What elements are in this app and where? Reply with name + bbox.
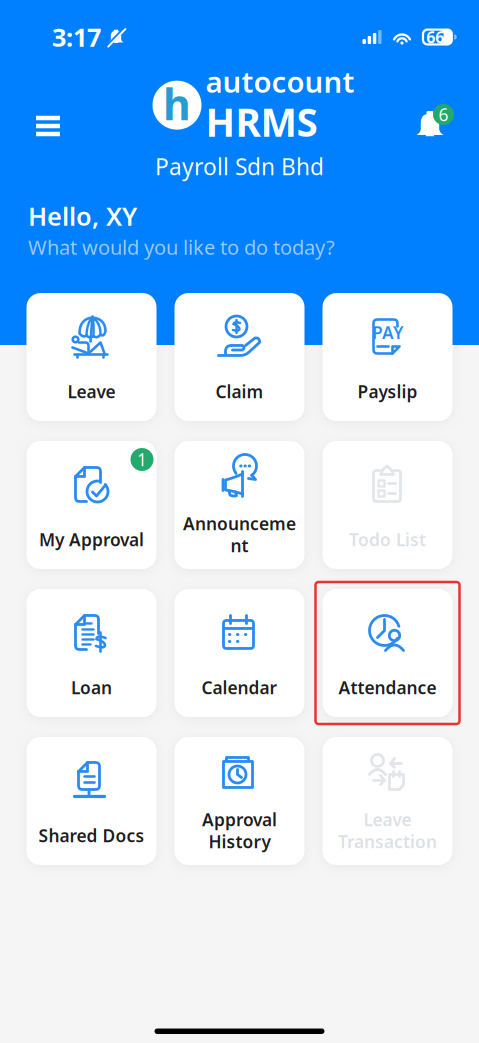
staticText: 3:17 xyxy=(52,20,101,54)
staticText: Leave xyxy=(67,380,115,403)
staticText: Approval xyxy=(202,808,277,831)
staticText: Claim xyxy=(215,380,263,403)
staticText: 66 xyxy=(426,26,444,48)
staticText: Payroll Sdn Bhd xyxy=(155,151,324,181)
button[interactable]: Menu xyxy=(16,101,82,151)
staticText: 1 xyxy=(137,448,147,471)
staticText: What would you like to do today? xyxy=(28,234,335,260)
staticText: Attendance xyxy=(338,676,436,699)
button[interactable]: Calendar xyxy=(174,589,304,717)
button[interactable]: Notifications xyxy=(408,95,462,149)
staticText: h xyxy=(163,75,191,132)
staticText: autocount xyxy=(205,62,354,101)
staticText: My Approval xyxy=(39,528,144,551)
staticText: HRMS xyxy=(205,96,317,147)
button[interactable]: Approval xyxy=(174,737,304,865)
button[interactable]: Leave xyxy=(322,737,452,865)
button[interactable]: Shared Docs xyxy=(26,737,156,865)
staticText: History xyxy=(208,830,270,853)
staticText: Announceme xyxy=(183,512,296,535)
staticText: 6 xyxy=(438,103,448,126)
staticText: Shared Docs xyxy=(38,824,144,847)
staticText: PAY xyxy=(372,321,403,344)
button[interactable]: Leave xyxy=(26,293,156,421)
staticText: Todo List xyxy=(349,528,426,551)
button[interactable]: PAY xyxy=(322,293,452,421)
staticText: Payslip xyxy=(357,380,417,403)
button[interactable]: Attendance xyxy=(322,589,452,717)
button[interactable]: Loan xyxy=(26,589,156,717)
button[interactable]: Claim xyxy=(174,293,304,421)
button[interactable]: Announceme xyxy=(174,441,304,569)
staticText: Loan xyxy=(71,676,112,699)
staticText: Leave xyxy=(363,808,411,831)
button[interactable]: My Approval xyxy=(26,441,156,569)
staticText: nt xyxy=(230,534,248,557)
staticText: Hello, XY xyxy=(28,199,137,233)
staticText: Transaction xyxy=(338,830,437,853)
staticText: Calendar xyxy=(201,676,277,699)
button[interactable]: Todo List xyxy=(322,441,452,569)
